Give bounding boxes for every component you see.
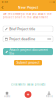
- button[interactable]: Brief Project title: [3, 26, 53, 32]
- staticText: Attach project document file: [9, 48, 48, 55]
- button[interactable]: Profile: [43, 90, 55, 98]
- staticText: Click here to see all projects: [11, 83, 45, 86]
- button[interactable]: Back: [0, 4, 5, 11]
- button[interactable]: Attach project document file: [3, 48, 53, 55]
- staticText: Profile: [45, 95, 52, 98]
- button[interactable]: Project deadline: [3, 36, 53, 42]
- staticText: Brief Project title: [9, 27, 35, 31]
- staticText: New Project: [18, 5, 38, 9]
- staticText: Submit project: [16, 61, 39, 64]
- staticText: ▪ ▪ ▮: [49, 1, 54, 3]
- button[interactable]: Submit project: [14, 60, 42, 65]
- button[interactable]: Click here to see all projects: [11, 83, 45, 86]
- button[interactable]: Home: [1, 90, 13, 98]
- staticText: Home: [4, 95, 10, 98]
- button[interactable]: Add: [25, 91, 31, 98]
- staticText: We recommend that you attach the project…: [3, 12, 53, 25]
- staticText: 9:41: [2, 0, 8, 4]
- staticText: Project deadline: [9, 37, 35, 41]
